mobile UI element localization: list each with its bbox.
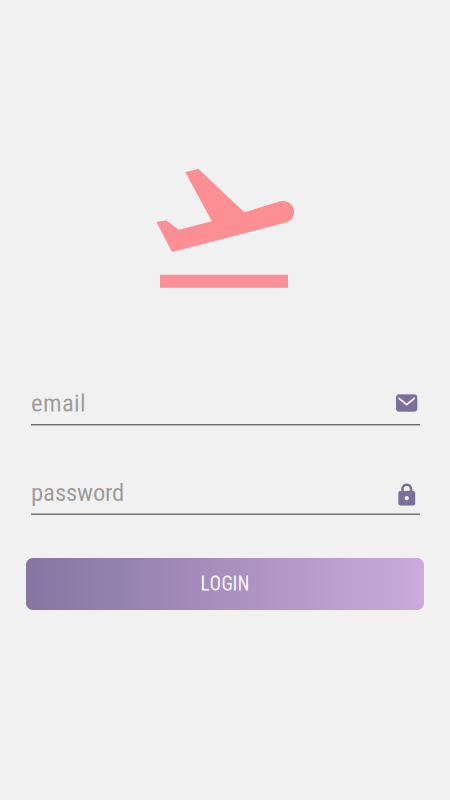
button[interactable]: Password bbox=[398, 479, 420, 505]
staticText: LOGIN bbox=[200, 573, 249, 595]
button[interactable]: LOGIN bbox=[26, 558, 424, 610]
staticText: password bbox=[31, 478, 124, 507]
staticText: email bbox=[31, 388, 86, 417]
button[interactable]: Email bbox=[396, 394, 420, 412]
